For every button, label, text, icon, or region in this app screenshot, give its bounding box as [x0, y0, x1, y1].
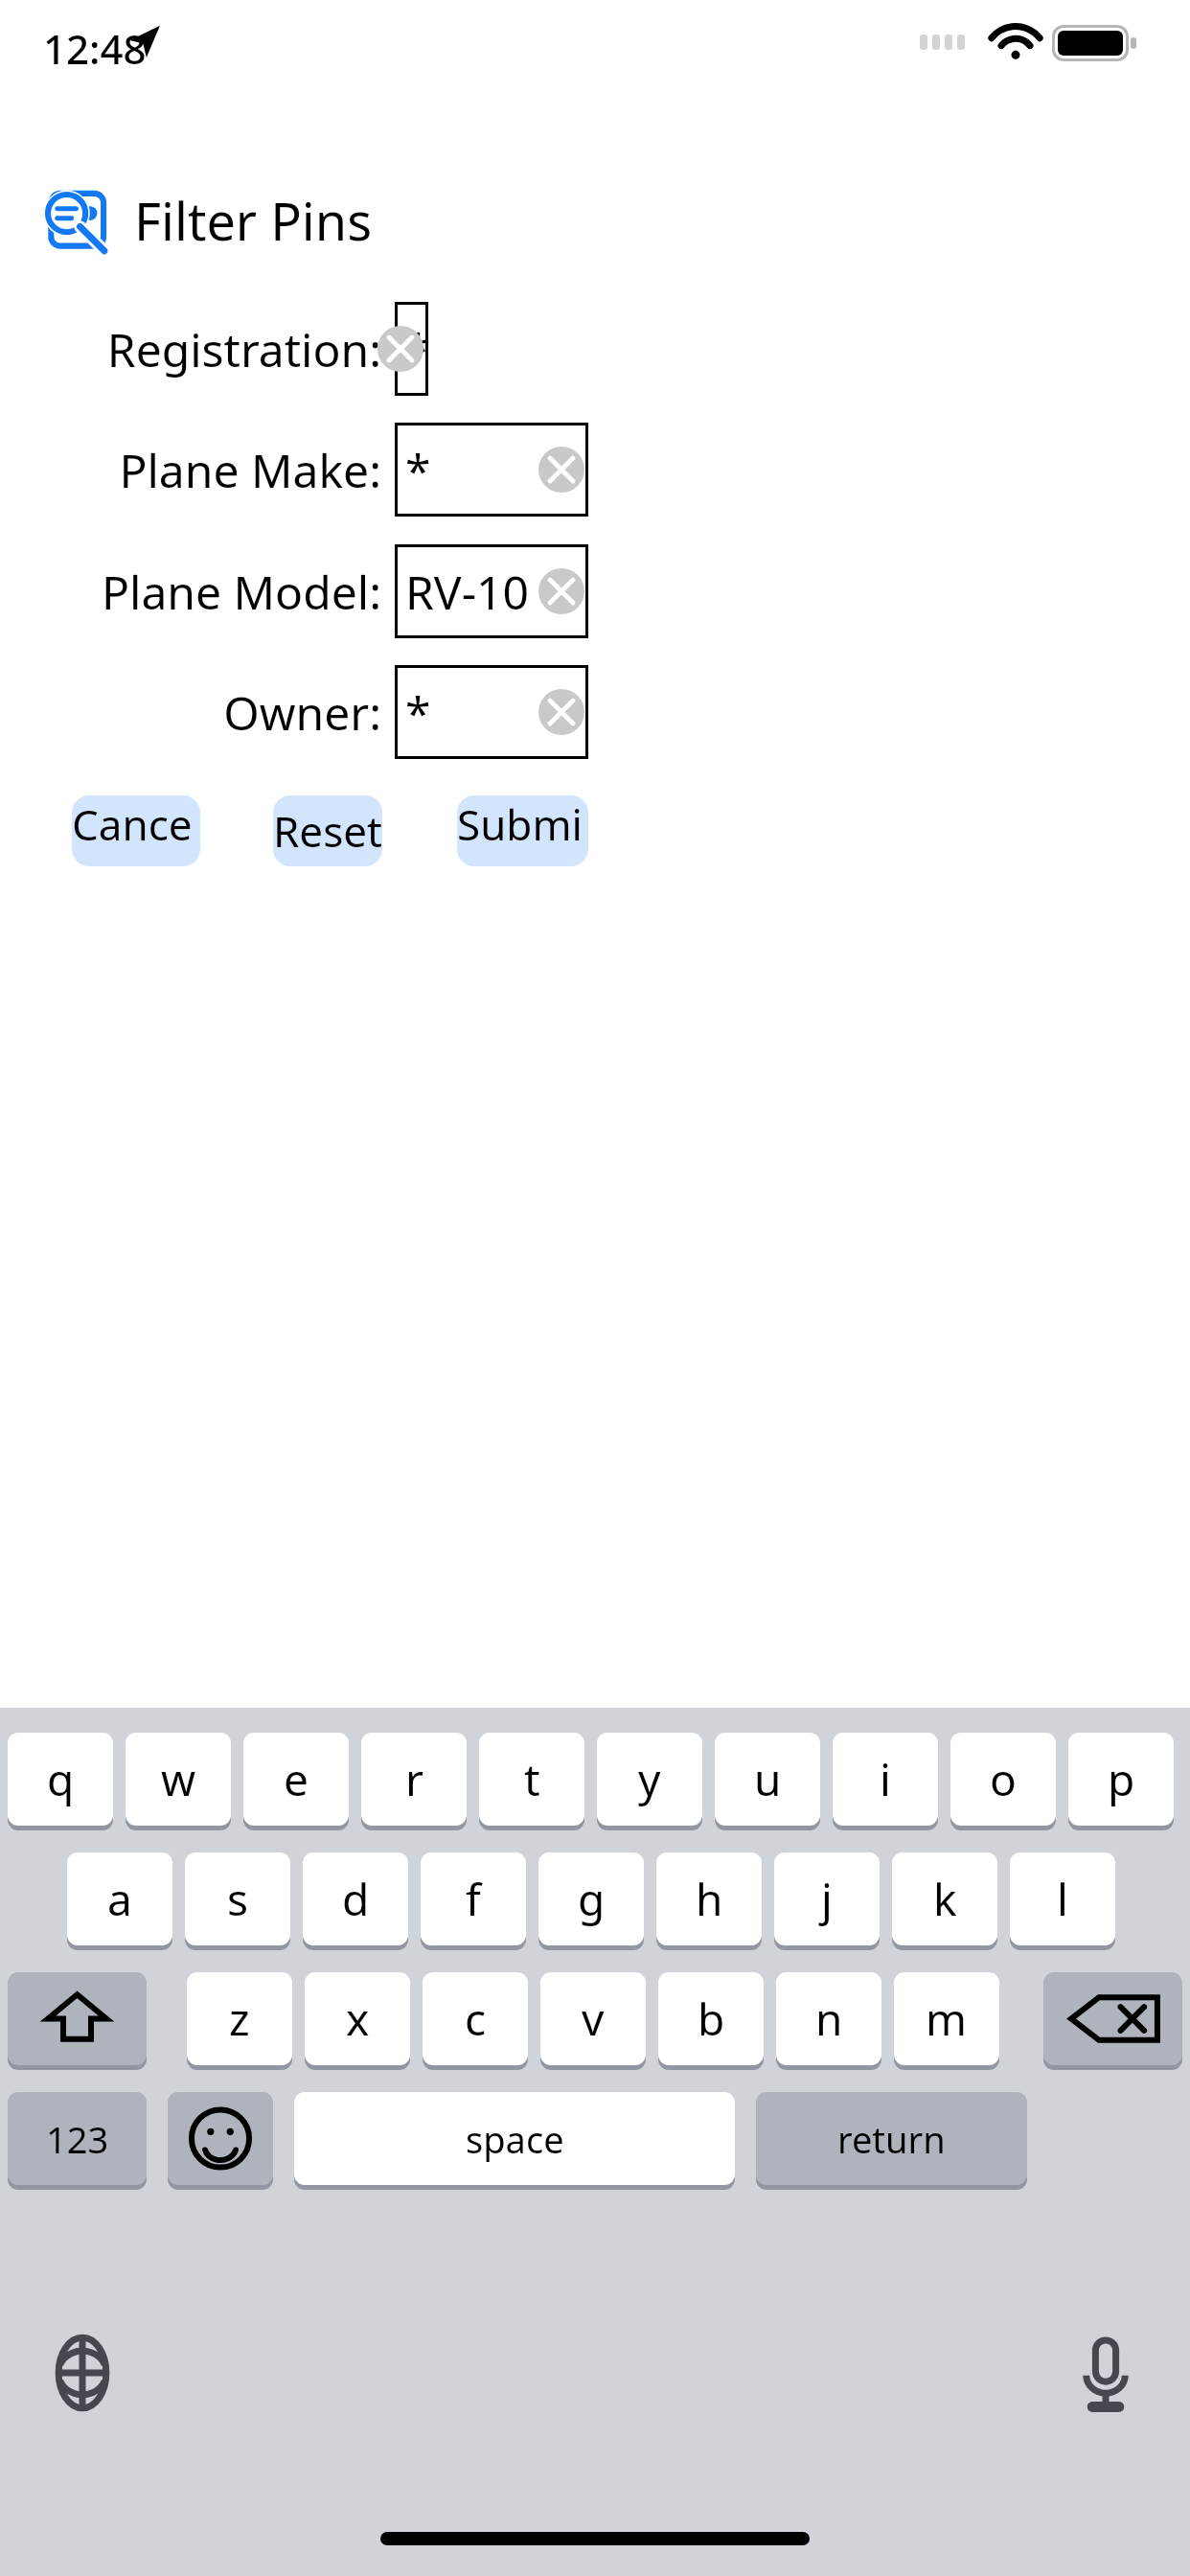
staticText: q — [47, 1749, 75, 1809]
button[interactable]: i — [833, 1733, 938, 1826]
staticText: Owner: — [223, 681, 381, 744]
button[interactable]: Dictate — [1062, 2329, 1150, 2417]
button[interactable]: o — [950, 1733, 1056, 1826]
button[interactable]: 123 — [8, 2092, 147, 2185]
staticText: Plane Make: — [119, 439, 381, 501]
staticText: Cancel — [72, 795, 200, 866]
staticText: 12:48 — [43, 21, 147, 76]
staticText: o — [990, 1749, 1017, 1809]
button[interactable]: a — [67, 1852, 172, 1945]
staticText: n — [815, 1989, 843, 2049]
staticText: return — [837, 2114, 946, 2164]
button[interactable]: f — [421, 1852, 526, 1945]
button[interactable]: l — [1010, 1852, 1115, 1945]
button[interactable]: Emoji — [168, 2092, 273, 2185]
staticText: h — [696, 1869, 723, 1929]
staticText: Reset — [273, 802, 382, 860]
staticText: v — [582, 1989, 605, 2049]
button[interactable]: * — [395, 302, 428, 396]
button[interactable]: space — [294, 2092, 735, 2185]
staticText: w — [161, 1749, 196, 1809]
button[interactable]: r — [361, 1733, 467, 1826]
staticText: a — [107, 1869, 132, 1929]
button[interactable]: Backspace — [1043, 1972, 1182, 2065]
staticText: d — [342, 1869, 370, 1929]
staticText: RV-10 — [405, 561, 530, 623]
staticText: * — [405, 318, 431, 380]
staticText: b — [698, 1989, 725, 2049]
button[interactable]: q — [8, 1733, 113, 1826]
staticText: z — [229, 1989, 250, 2049]
button[interactable]: Reset — [273, 795, 382, 866]
staticText: i — [880, 1749, 891, 1809]
button[interactable]: p — [1068, 1733, 1174, 1826]
staticText: * — [405, 439, 431, 501]
button[interactable]: z — [187, 1972, 292, 2065]
button[interactable]: RV-10 — [395, 544, 588, 638]
button[interactable]: b — [658, 1972, 764, 2065]
button[interactable]: Shift — [8, 1972, 147, 2065]
button[interactable]: c — [423, 1972, 528, 2065]
staticText: c — [465, 1989, 487, 2049]
staticText: y — [638, 1749, 661, 1809]
staticText: f — [466, 1869, 481, 1929]
staticText: u — [754, 1749, 782, 1809]
staticText: Filter Pins — [134, 185, 373, 256]
button[interactable]: e — [243, 1733, 349, 1826]
button[interactable]: Clear Registration: — [378, 326, 423, 372]
button[interactable]: j — [774, 1852, 880, 1945]
button[interactable]: Clear Plane Model: — [538, 568, 584, 614]
button[interactable]: d — [303, 1852, 408, 1945]
staticText: Plane Model: — [102, 561, 381, 623]
button[interactable]: k — [892, 1852, 997, 1945]
button[interactable]: u — [715, 1733, 820, 1826]
button[interactable]: * — [395, 423, 588, 517]
staticText: e — [284, 1749, 309, 1809]
button[interactable]: Change keyboard — [38, 2329, 126, 2417]
staticText: Registration: — [106, 318, 381, 380]
button[interactable]: Cancel — [72, 795, 200, 866]
button[interactable]: x — [305, 1972, 410, 2065]
staticText: m — [926, 1989, 968, 2049]
staticText: k — [933, 1869, 957, 1929]
staticText: x — [346, 1989, 370, 2049]
button[interactable]: s — [185, 1852, 290, 1945]
staticText: s — [227, 1869, 249, 1929]
staticText: * — [405, 681, 431, 744]
button[interactable]: n — [776, 1972, 881, 2065]
staticText: j — [821, 1869, 833, 1929]
button[interactable]: Clear Plane Make: — [538, 447, 584, 493]
staticText: 123 — [46, 2114, 109, 2164]
button[interactable]: return — [756, 2092, 1027, 2185]
staticText: space — [466, 2114, 564, 2164]
button[interactable]: g — [538, 1852, 644, 1945]
staticText: p — [1108, 1749, 1135, 1809]
button[interactable]: Clear Owner: — [538, 689, 584, 735]
button[interactable]: y — [597, 1733, 702, 1826]
staticText: l — [1057, 1869, 1068, 1929]
button[interactable]: Submit — [457, 795, 588, 866]
staticText: Submit — [457, 795, 588, 866]
button[interactable]: h — [656, 1852, 762, 1945]
staticText: t — [524, 1749, 540, 1809]
button[interactable]: m — [894, 1972, 999, 2065]
button[interactable]: * — [395, 665, 588, 759]
button[interactable]: v — [540, 1972, 646, 2065]
button[interactable]: t — [479, 1733, 584, 1826]
staticText: g — [578, 1869, 606, 1929]
button[interactable]: w — [126, 1733, 231, 1826]
staticText: r — [405, 1749, 423, 1809]
